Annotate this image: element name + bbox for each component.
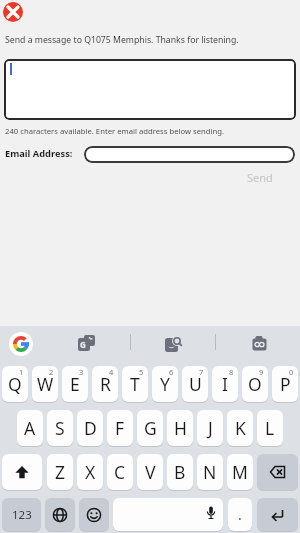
staticText: A	[24, 416, 36, 440]
staticText: W	[37, 372, 54, 396]
staticText: .	[238, 505, 242, 524]
staticText: R	[100, 372, 111, 396]
staticText: I	[222, 372, 228, 396]
button[interactable]: D	[77, 410, 103, 446]
button[interactable]: Q	[2, 366, 28, 402]
button[interactable]: Y	[152, 366, 178, 402]
button[interactable]	[2, 454, 42, 490]
staticText: J	[208, 416, 213, 440]
button[interactable]: 123	[2, 498, 41, 531]
button[interactable]: W	[32, 366, 58, 402]
button[interactable]: E	[62, 366, 88, 402]
staticText: S	[55, 416, 65, 440]
button[interactable]: .	[228, 498, 252, 531]
staticText: Z	[55, 460, 66, 484]
button[interactable]: C	[107, 454, 133, 490]
button[interactable]	[84, 146, 295, 163]
staticText: 5	[139, 367, 144, 377]
staticText: U	[189, 372, 202, 396]
button[interactable]: Send	[236, 166, 284, 188]
staticText: Y	[160, 372, 170, 396]
button[interactable]	[163, 332, 183, 352]
button[interactable]: Z	[47, 454, 73, 490]
button[interactable]: U	[182, 366, 208, 402]
button[interactable]	[3, 2, 23, 22]
staticText: O	[248, 372, 262, 396]
staticText: D	[84, 416, 97, 440]
button[interactable]: B	[167, 454, 193, 490]
staticText: G	[80, 339, 86, 350]
button[interactable]	[257, 498, 298, 531]
staticText: M	[232, 460, 248, 484]
button[interactable]: K	[227, 410, 253, 446]
button[interactable]: P	[272, 366, 298, 402]
staticText: E	[70, 372, 80, 396]
staticText: 7	[199, 367, 204, 377]
button[interactable]: A	[17, 410, 43, 446]
staticText: Email Address:	[5, 147, 73, 160]
staticText: K	[235, 416, 246, 440]
staticText: 123	[12, 507, 32, 523]
staticText: C	[114, 460, 126, 484]
button[interactable]	[9, 332, 33, 356]
button[interactable]	[250, 333, 270, 353]
staticText: 4	[109, 367, 114, 377]
button[interactable]	[79, 498, 109, 531]
button[interactable]	[257, 454, 298, 490]
button[interactable]: F	[107, 410, 133, 446]
button[interactable]: S	[47, 410, 73, 446]
button[interactable]: V	[137, 454, 163, 490]
staticText: P	[280, 372, 291, 396]
staticText: 8	[229, 367, 234, 377]
button[interactable]: H	[167, 410, 193, 446]
staticText: Q	[8, 372, 22, 396]
staticText: G	[144, 416, 157, 440]
staticText: 1	[19, 367, 24, 377]
button[interactable]: N	[197, 454, 223, 490]
staticText: Send	[247, 170, 273, 185]
button[interactable]: J	[197, 410, 223, 446]
button[interactable]: G	[137, 410, 163, 446]
staticText: B	[174, 460, 186, 484]
button[interactable]: T	[122, 366, 148, 402]
staticText: Send a message to Q1075 Memphis. Thanks …	[5, 34, 239, 46]
staticText: X	[85, 460, 96, 484]
staticText: 6	[169, 367, 174, 377]
button[interactable]	[45, 498, 75, 531]
staticText: T	[130, 372, 140, 396]
staticText: N	[203, 460, 217, 484]
staticText: L	[265, 416, 275, 440]
staticText: 240 characters available. Enter email ad…	[5, 126, 225, 136]
staticText: 9	[259, 367, 264, 377]
staticText: 3	[79, 367, 84, 377]
button[interactable]: R	[92, 366, 118, 402]
button[interactable]: X	[77, 454, 103, 490]
staticText: 2	[49, 367, 54, 377]
staticText: F	[115, 416, 125, 440]
staticText: H	[174, 416, 187, 440]
button[interactable]	[4, 59, 296, 120]
button[interactable]: M	[227, 454, 253, 490]
button[interactable]: I	[212, 366, 238, 402]
button[interactable]: O	[242, 366, 268, 402]
button[interactable]: L	[257, 410, 283, 446]
staticText: V	[145, 460, 156, 484]
staticText: 0	[289, 367, 294, 377]
button[interactable]: G	[76, 332, 96, 352]
button[interactable]	[113, 498, 223, 531]
